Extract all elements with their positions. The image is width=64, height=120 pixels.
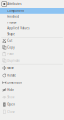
staticText: Rotate [7,74,16,77]
staticText: Shape [7,32,15,36]
button[interactable]: Paste [0,51,64,57]
button[interactable]: Cut [0,37,64,44]
staticText: Hide [7,88,14,92]
staticText: Finished [7,15,19,18]
button[interactable]: Rotate [0,72,64,79]
staticText: Show [7,95,14,99]
button[interactable]: Shape [0,31,64,37]
button[interactable]: Duplicate [0,57,64,64]
button[interactable]: Hide [0,86,64,94]
button[interactable]: Open [0,101,64,108]
button[interactable]: Copy [0,44,64,51]
button[interactable]: Attributes [0,0,64,8]
staticText: Duplicate [7,59,20,62]
staticText: Move [7,66,14,70]
button[interactable]: Dimension [0,79,64,86]
button[interactable]: Show [0,94,64,101]
staticText: Close [7,110,15,114]
button[interactable]: Close [0,108,64,115]
button[interactable]: Applied Values [0,25,64,31]
button[interactable]: Preview [0,20,64,25]
staticText: Cut [7,39,12,42]
staticText: Dimension [7,81,22,84]
staticText: Paste [7,52,14,56]
button[interactable]: Move [0,64,64,72]
staticText: Applied Values [7,26,29,30]
staticText: Copy [7,46,14,49]
button[interactable]: Finished [0,14,64,20]
staticText: Open [7,103,15,106]
staticText: Component [7,9,24,13]
button[interactable]: Component [0,8,64,14]
staticText: Attributes [7,2,21,6]
staticText: Preview [7,21,16,24]
